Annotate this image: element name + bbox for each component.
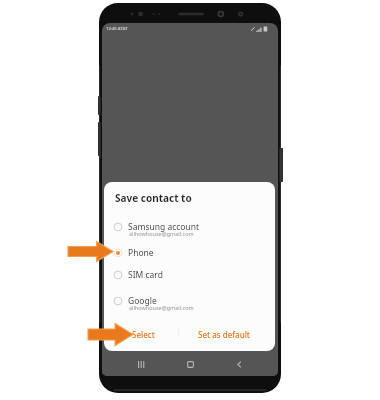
button[interactable]: Home xyxy=(180,354,200,374)
button[interactable]: Recent apps xyxy=(131,354,151,374)
button[interactable]: Back xyxy=(229,354,249,374)
staticText: Samsung account xyxy=(128,221,200,232)
staticText: Save contact to xyxy=(115,191,192,205)
staticText: allhowhouse@gmail.com xyxy=(129,304,194,311)
staticText: SIM card xyxy=(128,269,163,280)
staticText: Select xyxy=(132,329,155,340)
button[interactable]: Set as default xyxy=(195,327,253,342)
staticText: Set as default xyxy=(198,329,250,340)
staticText: 12:45 AT&T xyxy=(106,26,128,32)
button[interactable]: Google xyxy=(104,295,275,306)
button[interactable]: Phone xyxy=(104,247,275,258)
staticText: allhowhouse@gmail.com xyxy=(129,230,194,237)
staticText: Google xyxy=(128,295,157,306)
button[interactable]: Select xyxy=(129,327,158,342)
button[interactable]: Samsung account xyxy=(104,221,275,232)
staticText: Phone xyxy=(128,247,154,258)
button[interactable]: SIM card xyxy=(104,269,275,280)
